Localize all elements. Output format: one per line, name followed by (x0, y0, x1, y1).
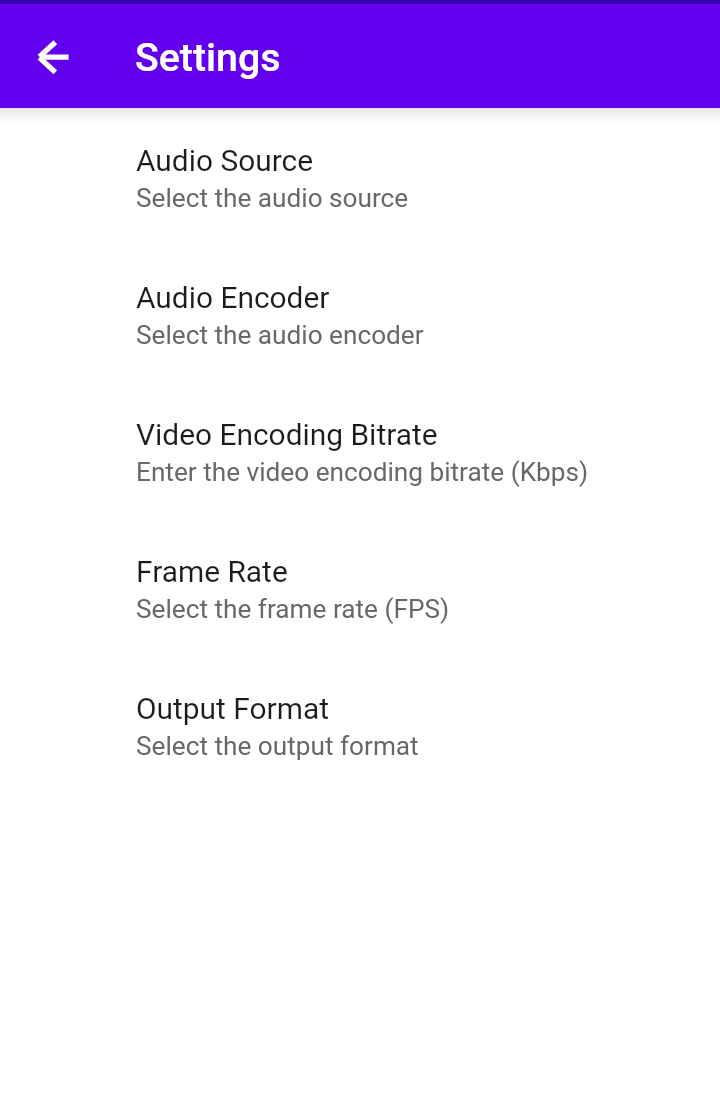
staticText: Output Format (136, 691, 329, 726)
button[interactable]: Audio Encoder (0, 255, 720, 392)
staticText: Video Encoding Bitrate (136, 417, 438, 452)
staticText: Settings (135, 35, 281, 81)
staticText: Select the output format (136, 731, 419, 762)
button[interactable]: Output Format (0, 666, 720, 803)
staticText: Frame Rate (136, 554, 288, 589)
staticText: Audio Source (136, 143, 314, 178)
staticText: Audio Encoder (136, 280, 330, 315)
button[interactable]: Navigate up (29, 32, 77, 80)
staticText: Select the frame rate (FPS) (136, 594, 450, 625)
staticText: Select the audio source (136, 183, 409, 214)
button[interactable]: Audio Source (0, 118, 720, 255)
button[interactable]: Frame Rate (0, 529, 720, 666)
staticText: Enter the video encoding bitrate (Kbps) (136, 457, 589, 488)
staticText: Select the audio encoder (136, 320, 424, 351)
button[interactable]: Video Encoding Bitrate (0, 392, 720, 529)
